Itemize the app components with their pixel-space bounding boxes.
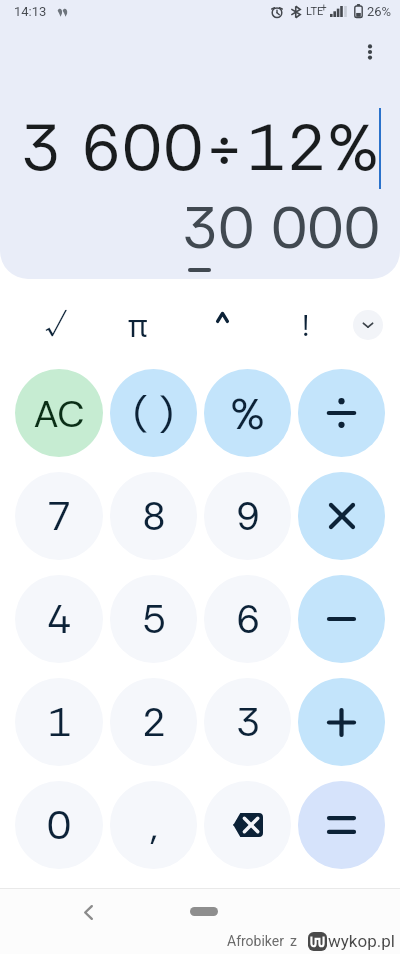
staticText: 8 (142, 490, 166, 542)
staticText: 7 (47, 490, 71, 542)
staticText: 2 (142, 696, 166, 748)
button[interactable]: π (114, 301, 162, 349)
button[interactable]: Power (198, 301, 246, 349)
staticText: ! (302, 306, 310, 345)
button[interactable]: 9 (204, 472, 291, 560)
button[interactable] (298, 781, 385, 869)
button[interactable]: √ (31, 301, 79, 349)
button[interactable]: ! (282, 301, 330, 349)
button[interactable]: 4 (15, 575, 103, 663)
staticText: 4 (47, 593, 71, 645)
button[interactable] (298, 369, 385, 457)
button[interactable]: ( ) (110, 369, 197, 457)
button[interactable] (298, 575, 385, 663)
staticText: 9 (236, 490, 260, 542)
staticText: % (230, 385, 265, 442)
button[interactable]: 3 (204, 678, 291, 766)
button[interactable] (298, 678, 385, 766)
button[interactable]: AC (15, 369, 103, 457)
button[interactable]: 1 (15, 678, 103, 766)
button[interactable]: 2 (110, 678, 197, 766)
staticText: z (290, 933, 297, 949)
button[interactable]: 7 (15, 472, 103, 560)
staticText: 30 000 (182, 189, 381, 266)
button[interactable]: , (110, 781, 197, 869)
button[interactable]: 5 (110, 575, 197, 663)
button[interactable]: Back (70, 894, 106, 930)
staticText: 5 (142, 593, 166, 645)
staticText: LTE (306, 5, 324, 18)
staticText: π (128, 305, 148, 346)
button[interactable]: % (204, 369, 291, 457)
staticText: + (321, 2, 327, 14)
button[interactable]: Home (190, 907, 218, 916)
staticText: √ (45, 306, 66, 344)
staticText: , (150, 799, 158, 851)
button[interactable] (298, 472, 385, 560)
button[interactable] (204, 781, 291, 869)
button[interactable]: Show more functions (353, 310, 383, 340)
button[interactable]: 8 (110, 472, 197, 560)
staticText: 0 (47, 799, 71, 851)
staticText: ( ) (133, 387, 174, 439)
staticText: Afrobiker (227, 933, 284, 949)
staticText: 26% (367, 4, 392, 19)
staticText: AC (33, 389, 85, 438)
button[interactable]: More options (346, 28, 394, 76)
button[interactable]: 6 (204, 575, 291, 663)
staticText: 1 (47, 696, 71, 748)
staticText: wykop.pl (328, 931, 395, 951)
staticText: 14:13 (14, 4, 47, 19)
staticText: 6 (236, 593, 260, 645)
button[interactable]: 0 (15, 781, 103, 869)
staticText: 3 600÷12% (21, 106, 381, 187)
staticText: 3 (236, 696, 260, 748)
